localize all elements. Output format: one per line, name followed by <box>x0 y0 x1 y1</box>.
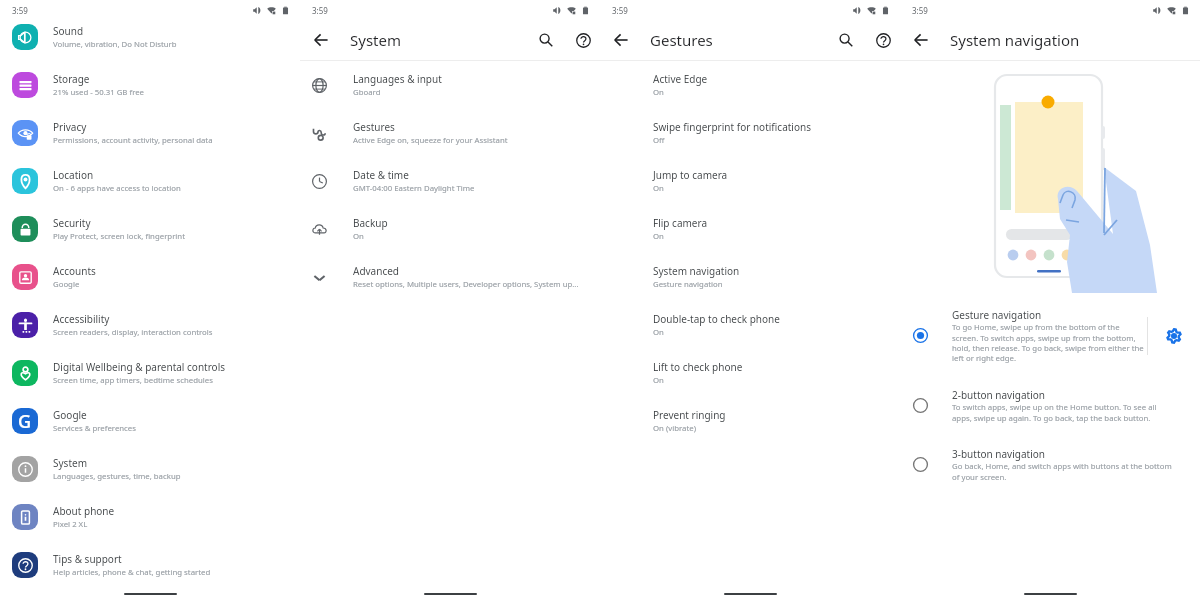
button[interactable]: Location <box>0 157 300 205</box>
staticText: Backup <box>353 216 388 230</box>
staticText: Play Protect, screen lock, fingerprint <box>53 231 186 242</box>
button[interactable]: Digital Wellbeing & parental controls <box>0 349 300 397</box>
button[interactable]: Help <box>571 28 595 52</box>
button[interactable]: Date & time <box>300 157 600 205</box>
staticText: Jump to camera <box>653 168 728 182</box>
button[interactable]: 2-button navigation <box>900 388 1200 447</box>
staticText: G <box>18 409 32 434</box>
staticText: 21% used - 50.31 GB free <box>53 87 145 98</box>
staticText: 3-button navigation <box>952 447 1045 461</box>
staticText: Pixel 2 XL <box>53 519 88 530</box>
staticText: Advanced <box>353 264 399 278</box>
staticText: On <box>353 231 364 242</box>
staticText: On - 6 apps have access to location <box>53 183 181 194</box>
button[interactable]: G <box>0 397 300 445</box>
staticText: 3:59 <box>312 5 328 16</box>
staticText: Date & time <box>353 168 409 182</box>
button[interactable]: Help <box>871 28 895 52</box>
staticText: Languages & input <box>353 72 442 86</box>
button[interactable]: Search <box>834 28 858 52</box>
button[interactable]: Sound <box>0 13 300 61</box>
button[interactable]: Accounts <box>0 253 300 301</box>
button[interactable]: Security <box>0 205 300 253</box>
staticText: To switch apps, swipe up on the Home but… <box>952 402 1178 423</box>
staticText: On <box>653 183 664 194</box>
button[interactable]: Back <box>608 27 634 53</box>
button[interactable]: Storage <box>0 61 300 109</box>
button[interactable]: 3-button navigation <box>900 447 1200 482</box>
staticText: Active Edge <box>653 72 708 86</box>
staticText: Swipe fingerprint for notifications <box>653 120 811 134</box>
staticText: Flip camera <box>653 216 708 230</box>
staticText: On <box>653 87 664 98</box>
staticText: 3:59 <box>12 5 28 16</box>
staticText: System navigation <box>653 264 740 278</box>
staticText: Tips & support <box>53 552 122 566</box>
staticText: Sound <box>53 24 84 38</box>
staticText: Screen time, app timers, bedtime schedul… <box>53 375 213 386</box>
button[interactable]: Gesture navigation settings <box>1148 316 1200 356</box>
staticText: About phone <box>53 504 115 518</box>
button[interactable]: Swipe fingerprint for notifications <box>600 109 900 157</box>
button[interactable]: Tips & support <box>0 541 300 589</box>
staticText: Help articles, phone & chat, getting sta… <box>53 567 211 578</box>
staticText: System <box>53 456 87 470</box>
staticText: Gestures <box>353 120 395 134</box>
staticText: Languages, gestures, time, backup <box>53 471 181 482</box>
button[interactable]: Active Edge <box>600 61 900 109</box>
button[interactable]: Privacy <box>0 109 300 157</box>
button[interactable]: Backup <box>300 205 600 253</box>
staticText: Permissions, account activity, personal … <box>53 135 213 146</box>
staticText: Location <box>53 168 94 182</box>
staticText: Google <box>53 408 87 422</box>
button[interactable]: Accessibility <box>0 301 300 349</box>
staticText: Gesture navigation <box>952 308 1042 322</box>
staticText: 3:59 <box>612 5 628 16</box>
button[interactable]: System <box>0 445 300 493</box>
button[interactable]: Languages & input <box>300 61 600 109</box>
staticText: Accounts <box>53 264 96 278</box>
staticText: Storage <box>53 72 90 86</box>
staticText: On <box>653 231 664 242</box>
staticText: On <box>653 327 664 338</box>
staticText: Prevent ringing <box>653 408 726 422</box>
button[interactable]: Advanced <box>300 253 600 301</box>
staticText: Volume, vibration, Do Not Disturb <box>53 39 177 50</box>
staticText: Gestures <box>650 30 713 50</box>
staticText: Gboard <box>353 87 381 98</box>
staticText: Go back, Home, and switch apps with butt… <box>952 461 1178 482</box>
button[interactable]: Back <box>908 27 934 53</box>
button[interactable]: Gesture navigation <box>900 308 1200 388</box>
button[interactable]: Lift to check phone <box>600 349 900 397</box>
staticText: Digital Wellbeing & parental controls <box>53 360 226 374</box>
staticText: 2-button navigation <box>952 388 1045 402</box>
staticText: Reset options, Multiple users, Developer… <box>353 279 579 290</box>
button[interactable]: Back <box>308 27 334 53</box>
button[interactable]: Flip camera <box>600 205 900 253</box>
staticText: Security <box>53 216 91 230</box>
staticText: 3:59 <box>912 5 928 16</box>
staticText: Lift to check phone <box>653 360 743 374</box>
button[interactable]: Gestures <box>300 109 600 157</box>
staticText: Active Edge on, squeeze for your Assista… <box>353 135 508 146</box>
staticText: GMT-04:00 Eastern Daylight Time <box>353 183 475 194</box>
staticText: Services & preferences <box>53 423 136 434</box>
staticText: Privacy <box>53 120 87 134</box>
button[interactable]: Double-tap to check phone <box>600 301 900 349</box>
button[interactable]: Jump to camera <box>600 157 900 205</box>
staticText: Screen readers, display, interaction con… <box>53 327 213 338</box>
button[interactable]: About phone <box>0 493 300 541</box>
staticText: Off <box>653 135 665 146</box>
staticText: System <box>350 30 401 50</box>
staticText: Google <box>53 279 80 290</box>
staticText: On <box>653 375 664 386</box>
staticText: Double-tap to check phone <box>653 312 780 326</box>
staticText: Gesture navigation <box>653 279 723 290</box>
button[interactable]: Prevent ringing <box>600 397 900 445</box>
button[interactable]: Search <box>534 28 558 52</box>
staticText: Accessibility <box>53 312 110 326</box>
staticText: To go Home, swipe up from the bottom of … <box>952 322 1144 363</box>
staticText: System navigation <box>950 30 1080 50</box>
staticText: On (vibrate) <box>653 423 697 434</box>
button[interactable]: System navigation <box>600 253 900 301</box>
